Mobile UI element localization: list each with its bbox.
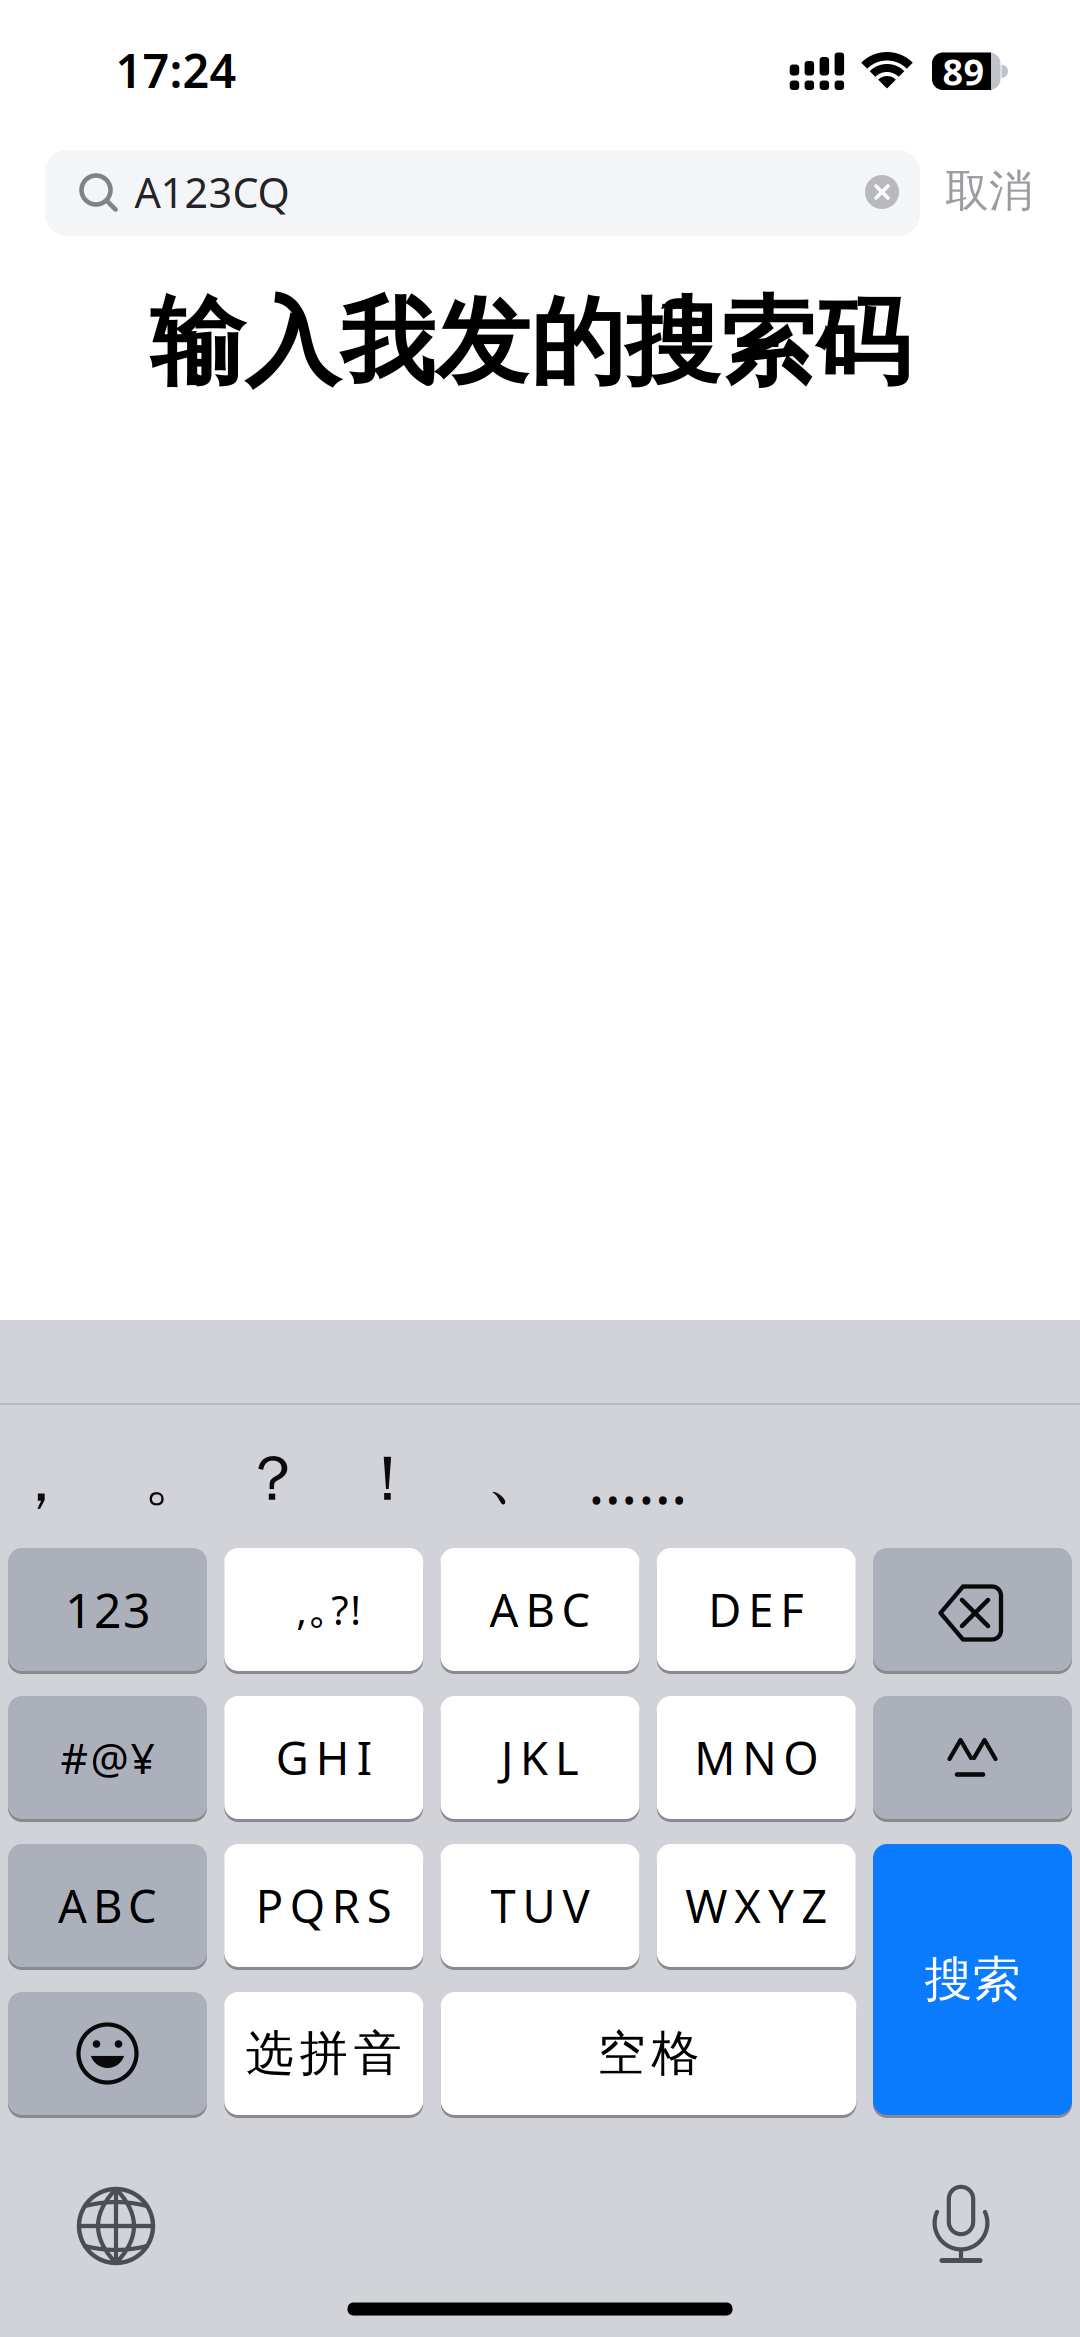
- staticText: GHI: [276, 1727, 372, 1788]
- button[interactable]: 清除: [861, 171, 903, 213]
- staticText: ！: [356, 1440, 419, 1517]
- button[interactable]: 取消: [945, 164, 1033, 218]
- button[interactable]: DEF: [657, 1548, 856, 1671]
- staticText: 空格: [598, 2024, 700, 2083]
- staticText: A123CQ: [134, 165, 289, 219]
- button[interactable]: 、: [486, 1437, 549, 1514]
- staticText: ,｡?!: [296, 1583, 361, 1636]
- staticText: DEF: [708, 1579, 804, 1640]
- staticText: 17:24: [115, 39, 236, 101]
- staticText: WXYZ: [685, 1875, 827, 1936]
- button[interactable]: MNO: [657, 1696, 856, 1819]
- staticText: ……: [588, 1438, 688, 1522]
- button[interactable]: 搜索: [873, 1844, 1072, 2115]
- button[interactable]: GHI: [224, 1696, 423, 1819]
- staticText: 。: [143, 1439, 206, 1516]
- button[interactable]: WXYZ: [657, 1844, 856, 1967]
- staticText: JKL: [501, 1727, 579, 1788]
- button[interactable]: ！: [356, 1440, 419, 1517]
- button[interactable]: #@¥: [8, 1696, 207, 1819]
- staticText: 、: [486, 1437, 549, 1514]
- button[interactable]: ABC: [440, 1548, 639, 1671]
- button[interactable]: ABC: [8, 1844, 207, 1967]
- button[interactable]: JKL: [440, 1696, 639, 1819]
- staticText: 89: [942, 48, 984, 95]
- staticText: PQRS: [256, 1875, 392, 1936]
- button[interactable]: TUV: [440, 1844, 639, 1967]
- staticText: 搜索: [924, 1950, 1020, 2009]
- staticText: MNO: [694, 1727, 818, 1788]
- staticText: 输入我发的搜索码: [150, 285, 910, 401]
- button[interactable]: 表情: [8, 1992, 207, 2115]
- button[interactable]: 分词: [873, 1696, 1072, 1819]
- button[interactable]: ，: [9, 1441, 72, 1518]
- staticText: TUV: [490, 1875, 589, 1936]
- button[interactable]: ,｡?!: [224, 1548, 423, 1671]
- staticText: #@¥: [60, 1729, 154, 1786]
- staticText: 选拼音: [246, 2024, 402, 2083]
- button[interactable]: PQRS: [224, 1844, 423, 1967]
- button[interactable]: 123: [8, 1548, 207, 1671]
- button[interactable]: 切换输入法: [66, 2176, 166, 2276]
- button[interactable]: ……: [588, 1438, 688, 1522]
- button[interactable]: 听写: [911, 2174, 1011, 2274]
- staticText: ABC: [489, 1579, 590, 1640]
- button[interactable]: 选拼音: [224, 1992, 423, 2115]
- button[interactable]: ？: [241, 1440, 304, 1517]
- staticText: ABC: [58, 1875, 157, 1936]
- staticText: 123: [65, 1578, 150, 1641]
- staticText: 取消: [945, 164, 1033, 218]
- button[interactable]: 。: [143, 1439, 206, 1516]
- button[interactable]: A123CQ: [45, 150, 920, 236]
- staticText: ，: [9, 1441, 72, 1518]
- button[interactable]: 删除: [873, 1548, 1072, 1671]
- staticText: ？: [241, 1440, 304, 1517]
- button[interactable]: 空格: [441, 1992, 856, 2115]
